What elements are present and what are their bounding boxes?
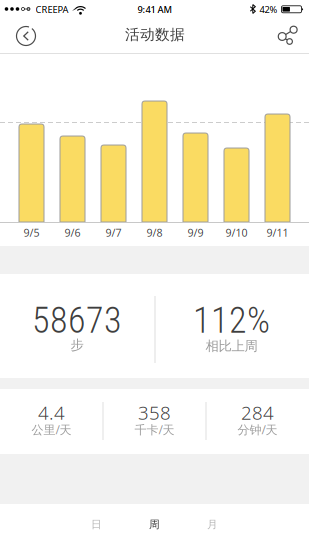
staticText: 58673 bbox=[32, 299, 122, 342]
button[interactable]: 日 bbox=[67, 501, 125, 547]
staticText: 9:41 AM bbox=[137, 3, 172, 15]
staticText: 9/8 bbox=[146, 225, 162, 240]
button[interactable] bbox=[269, 18, 305, 54]
staticText: CREEPA bbox=[35, 3, 68, 15]
staticText: 9/5 bbox=[23, 225, 39, 240]
button[interactable] bbox=[4, 18, 40, 54]
staticText: 9/11 bbox=[266, 225, 288, 240]
staticText: 42% bbox=[259, 3, 277, 15]
staticText: 相比上周 bbox=[205, 338, 257, 354]
staticText: 4.4 bbox=[38, 400, 65, 425]
staticText: 112% bbox=[193, 299, 270, 342]
button[interactable]: 月 bbox=[183, 501, 241, 547]
button[interactable]: 周 bbox=[125, 501, 183, 547]
staticText: 周 bbox=[149, 518, 160, 531]
staticText: 284 bbox=[241, 400, 274, 425]
staticText: 9/9 bbox=[187, 225, 203, 240]
staticText: 分钟/天 bbox=[237, 421, 277, 437]
staticText: 日 bbox=[91, 518, 102, 531]
staticText: 步 bbox=[70, 337, 83, 353]
staticText: 358 bbox=[138, 400, 171, 425]
staticText: 9/7 bbox=[105, 225, 121, 240]
staticText: 活动数据 bbox=[125, 25, 185, 43]
staticText: 9/10 bbox=[225, 225, 247, 240]
staticText: 公里/天 bbox=[31, 421, 71, 437]
staticText: 月 bbox=[207, 518, 218, 531]
staticText: 千卡/天 bbox=[134, 421, 174, 437]
staticText: 9/6 bbox=[64, 225, 80, 240]
